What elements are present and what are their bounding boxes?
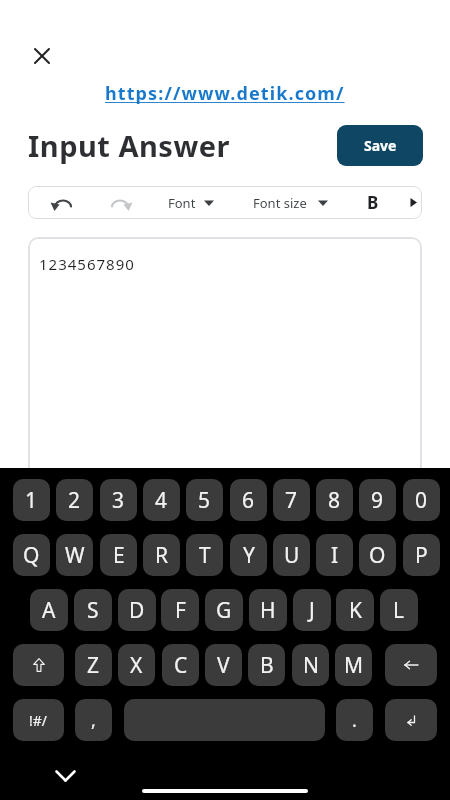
staticText: Q	[23, 541, 40, 570]
staticText: Font	[168, 194, 196, 212]
staticText: E	[113, 541, 125, 570]
staticText: F	[175, 596, 186, 625]
button[interactable]: H	[249, 589, 287, 631]
staticText: B	[367, 191, 379, 214]
button[interactable]: O	[359, 534, 396, 576]
staticText: Z	[87, 651, 100, 680]
button[interactable]: G	[205, 589, 243, 631]
button[interactable]: E	[100, 534, 137, 576]
staticText: Font size	[253, 194, 307, 212]
staticText: M	[344, 651, 364, 680]
staticText: 0	[415, 486, 428, 515]
staticText: N	[303, 651, 319, 680]
button[interactable]	[30, 44, 54, 68]
staticText: S	[87, 596, 99, 625]
button[interactable]: https://www.detik.com/	[105, 81, 345, 106]
button[interactable]: W	[56, 534, 93, 576]
staticText: U	[284, 541, 300, 570]
button[interactable]: X	[118, 644, 155, 686]
button[interactable]: 4	[143, 479, 180, 521]
staticText: I	[331, 541, 339, 570]
button[interactable]: Y	[230, 534, 267, 576]
staticText: ,	[91, 708, 96, 733]
button[interactable]: I	[316, 534, 353, 576]
staticText: 7	[285, 486, 298, 515]
button[interactable]: U	[273, 534, 310, 576]
staticText: 2	[68, 486, 81, 515]
button[interactable]: D	[118, 589, 156, 631]
button[interactable]: S	[74, 589, 112, 631]
button[interactable]: N	[292, 644, 329, 686]
button[interactable]	[13, 644, 64, 686]
button[interactable]: 9	[359, 479, 396, 521]
staticText: !#/	[29, 711, 48, 730]
button[interactable]: A	[30, 589, 68, 631]
button[interactable]: ,	[75, 699, 112, 741]
button[interactable]: 1234567890	[28, 237, 422, 477]
button[interactable]: 2	[56, 479, 93, 521]
button[interactable]	[104, 186, 136, 219]
staticText: 6	[242, 486, 255, 515]
button[interactable]: 8	[316, 479, 353, 521]
button[interactable]: 3	[100, 479, 137, 521]
staticText: W	[65, 541, 85, 570]
staticText: T	[199, 541, 211, 570]
button[interactable]: Q	[13, 534, 50, 576]
staticText: R	[155, 541, 169, 570]
button[interactable]: !#/	[13, 699, 64, 741]
button[interactable]: Save	[337, 125, 423, 166]
button[interactable]	[47, 186, 79, 219]
button[interactable]: Z	[75, 644, 112, 686]
button[interactable]	[385, 644, 437, 686]
button[interactable]: K	[336, 589, 374, 631]
staticText: 1234567890	[39, 254, 135, 274]
staticText: J	[309, 596, 315, 625]
staticText: B	[260, 651, 274, 680]
button[interactable]: F	[161, 589, 199, 631]
staticText: P	[415, 541, 428, 570]
button[interactable]: 0	[403, 479, 440, 521]
staticText: 8	[328, 486, 341, 515]
staticText: Save	[364, 136, 397, 155]
staticText: Input Answer	[28, 126, 231, 165]
staticText: X	[130, 651, 143, 680]
button[interactable]	[385, 699, 437, 741]
button[interactable]: .	[336, 699, 373, 741]
button[interactable]: B	[358, 186, 388, 219]
button[interactable]: M	[335, 644, 372, 686]
staticText: C	[174, 651, 188, 680]
staticText: Y	[243, 541, 255, 570]
staticText: 5	[198, 486, 211, 515]
staticText: 9	[371, 486, 384, 515]
staticText: 4	[155, 486, 168, 515]
staticText: H	[260, 596, 276, 625]
button[interactable]: P	[403, 534, 440, 576]
staticText: V	[217, 651, 230, 680]
button[interactable]: V	[205, 644, 242, 686]
button[interactable]: 6	[230, 479, 267, 521]
button[interactable]: C	[162, 644, 199, 686]
staticText: L	[393, 596, 405, 625]
button[interactable]	[48, 763, 82, 789]
button[interactable]: 1	[13, 479, 50, 521]
button[interactable]: Font size	[247, 186, 335, 219]
staticText: K	[349, 596, 362, 625]
staticText: 3	[112, 486, 125, 515]
button[interactable]: L	[380, 589, 418, 631]
button[interactable]: 7	[273, 479, 310, 521]
staticText: G	[216, 596, 232, 625]
staticText: A	[42, 596, 56, 625]
button[interactable]	[124, 699, 325, 741]
button[interactable]: J	[293, 589, 331, 631]
staticText: 1	[25, 486, 38, 515]
staticText: O	[369, 541, 386, 570]
button[interactable]: T	[186, 534, 223, 576]
button[interactable]: 5	[186, 479, 223, 521]
button[interactable]: R	[143, 534, 180, 576]
button[interactable]: B	[248, 644, 285, 686]
staticText: .	[352, 708, 357, 733]
button[interactable]: Font	[162, 186, 222, 219]
staticText: D	[129, 596, 145, 625]
